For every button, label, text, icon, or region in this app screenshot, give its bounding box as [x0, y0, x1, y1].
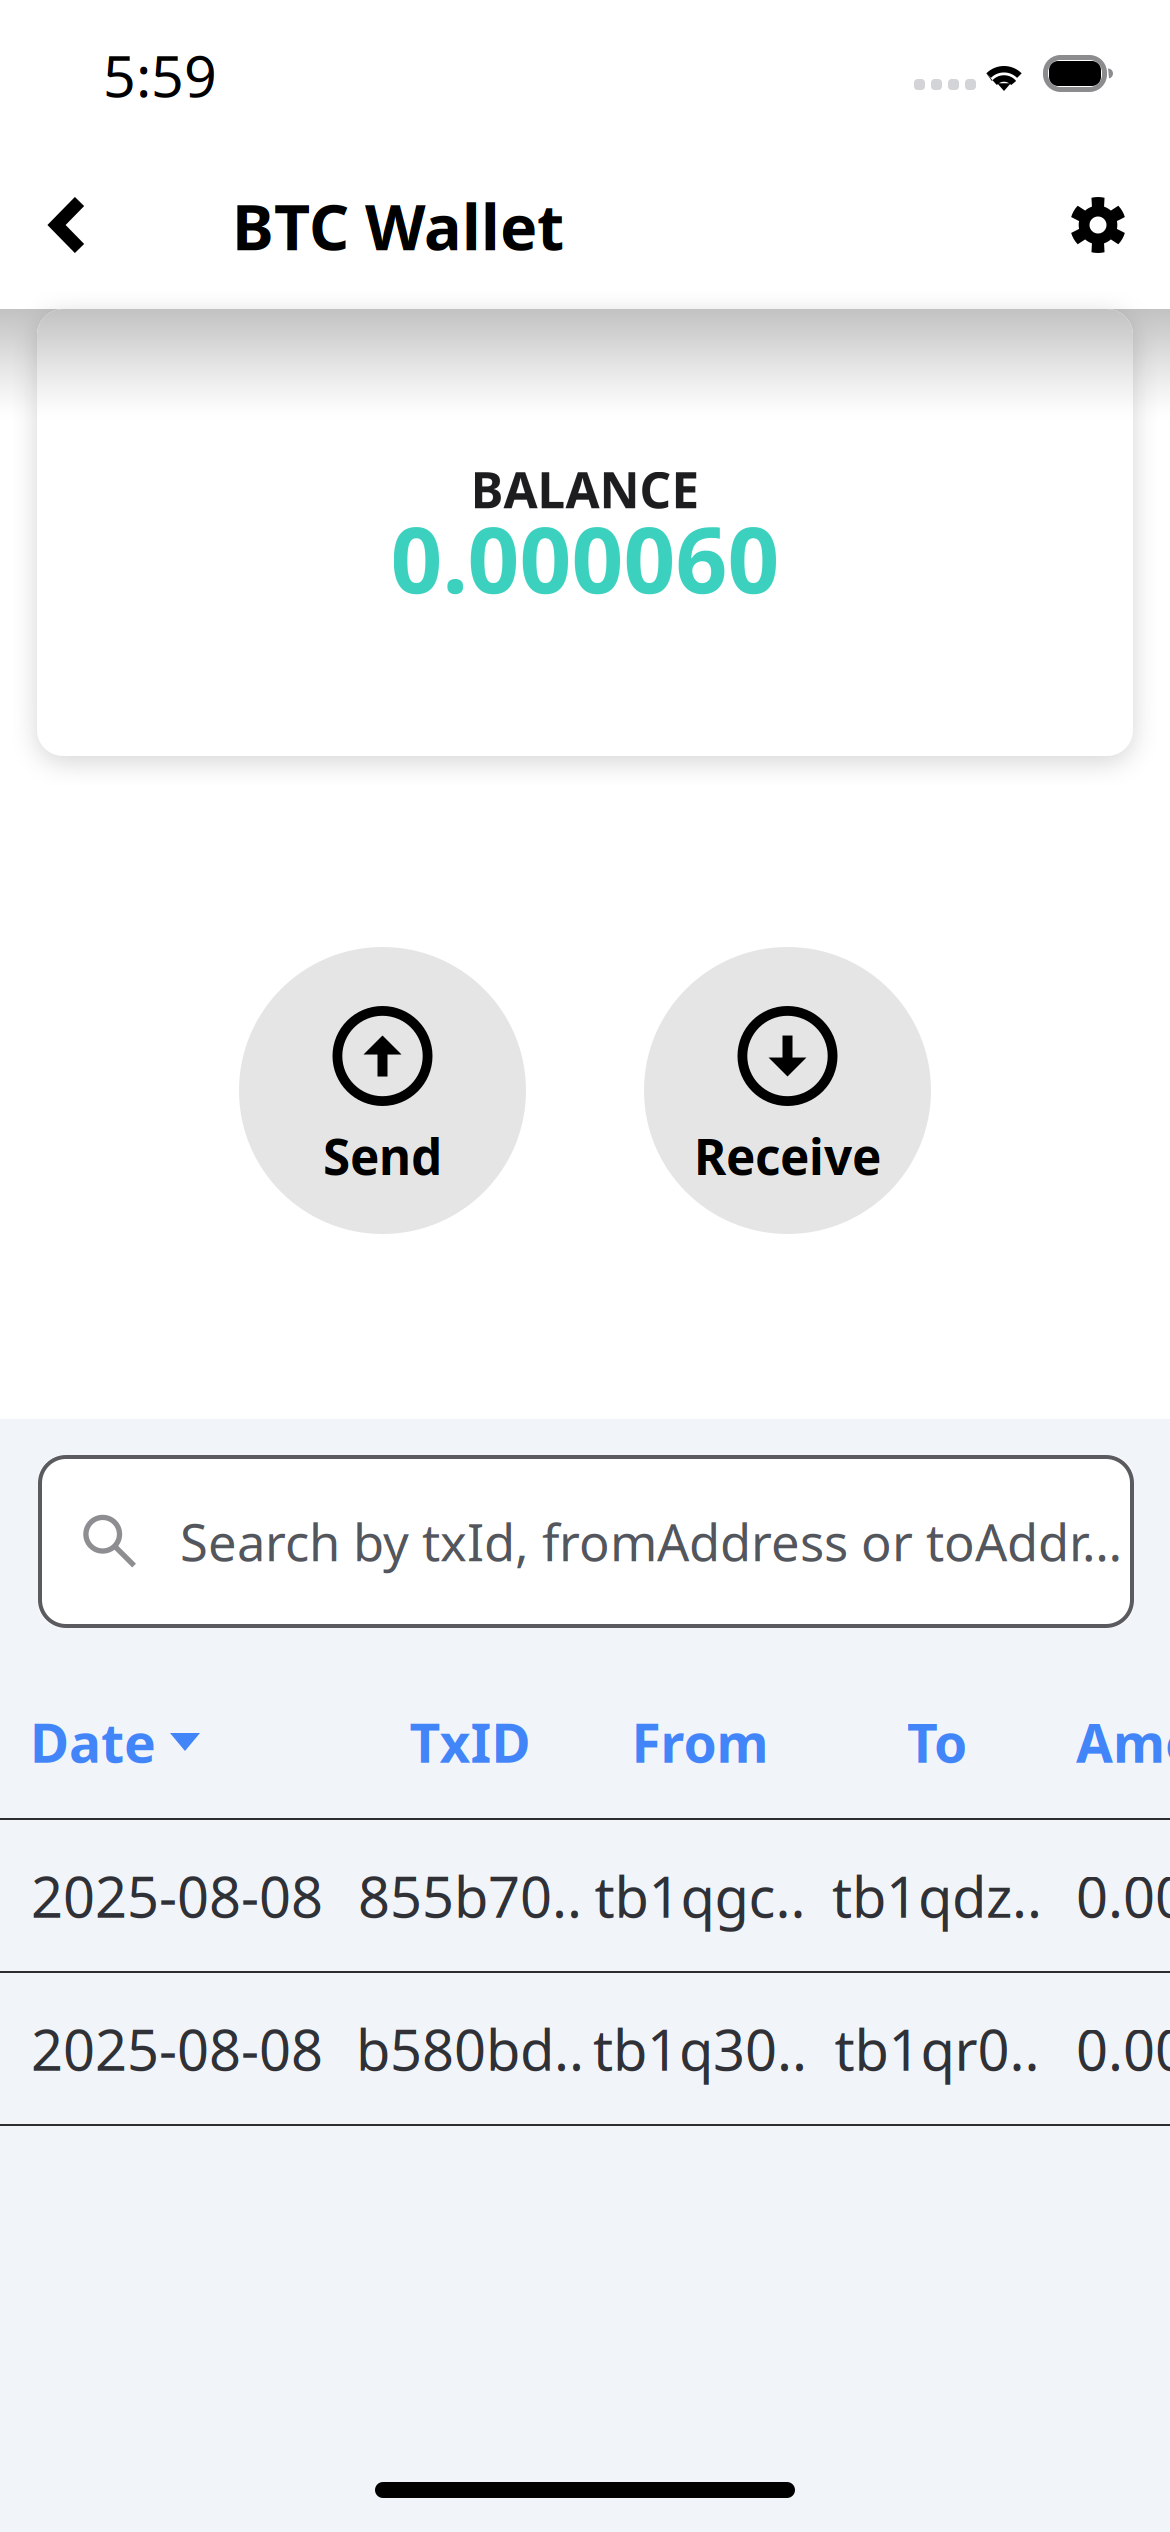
staticText: tb1qdz..	[832, 1859, 1042, 1933]
staticText: From	[631, 1707, 768, 1777]
staticText: b580bd..	[356, 2012, 584, 2086]
button[interactable]: Back	[14, 169, 122, 281]
staticText: 5:59	[103, 37, 217, 113]
staticText: 2025-08-08	[31, 1859, 323, 1933]
staticText: TxID	[409, 1707, 530, 1777]
staticText: 0.000030	[1076, 1859, 1170, 1933]
staticText: tb1q30..	[593, 2012, 807, 2086]
button[interactable]: Date	[30, 1697, 200, 1787]
staticText: Send	[323, 1123, 442, 1188]
staticText: Amount	[1076, 1707, 1170, 1777]
staticText: 855b70..	[358, 1859, 582, 1933]
staticText: BALANCE	[470, 456, 699, 522]
staticText: 0.000060	[390, 498, 779, 618]
staticText: tb1qr0..	[834, 2012, 1039, 2086]
button[interactable]: TxID	[409, 1697, 530, 1787]
button[interactable]: Receive	[644, 947, 931, 1234]
button[interactable]: To	[907, 1697, 967, 1787]
staticText: Search by txId, fromAddress or toAddr…	[180, 1508, 1122, 1575]
staticText: tb1qgc..	[594, 1859, 805, 1933]
button[interactable]: From	[631, 1697, 768, 1787]
button[interactable]: Amount	[1076, 1697, 1170, 1787]
staticText: BTC Wallet	[232, 184, 564, 268]
staticText: Receive	[694, 1123, 881, 1188]
button[interactable]: Send	[239, 947, 526, 1234]
staticText: 0.000030	[1076, 2012, 1170, 2086]
staticText: Date	[30, 1707, 156, 1777]
button[interactable]: Settings	[1042, 169, 1154, 281]
staticText: 2025-08-08	[31, 2012, 323, 2086]
staticText: To	[907, 1707, 967, 1777]
